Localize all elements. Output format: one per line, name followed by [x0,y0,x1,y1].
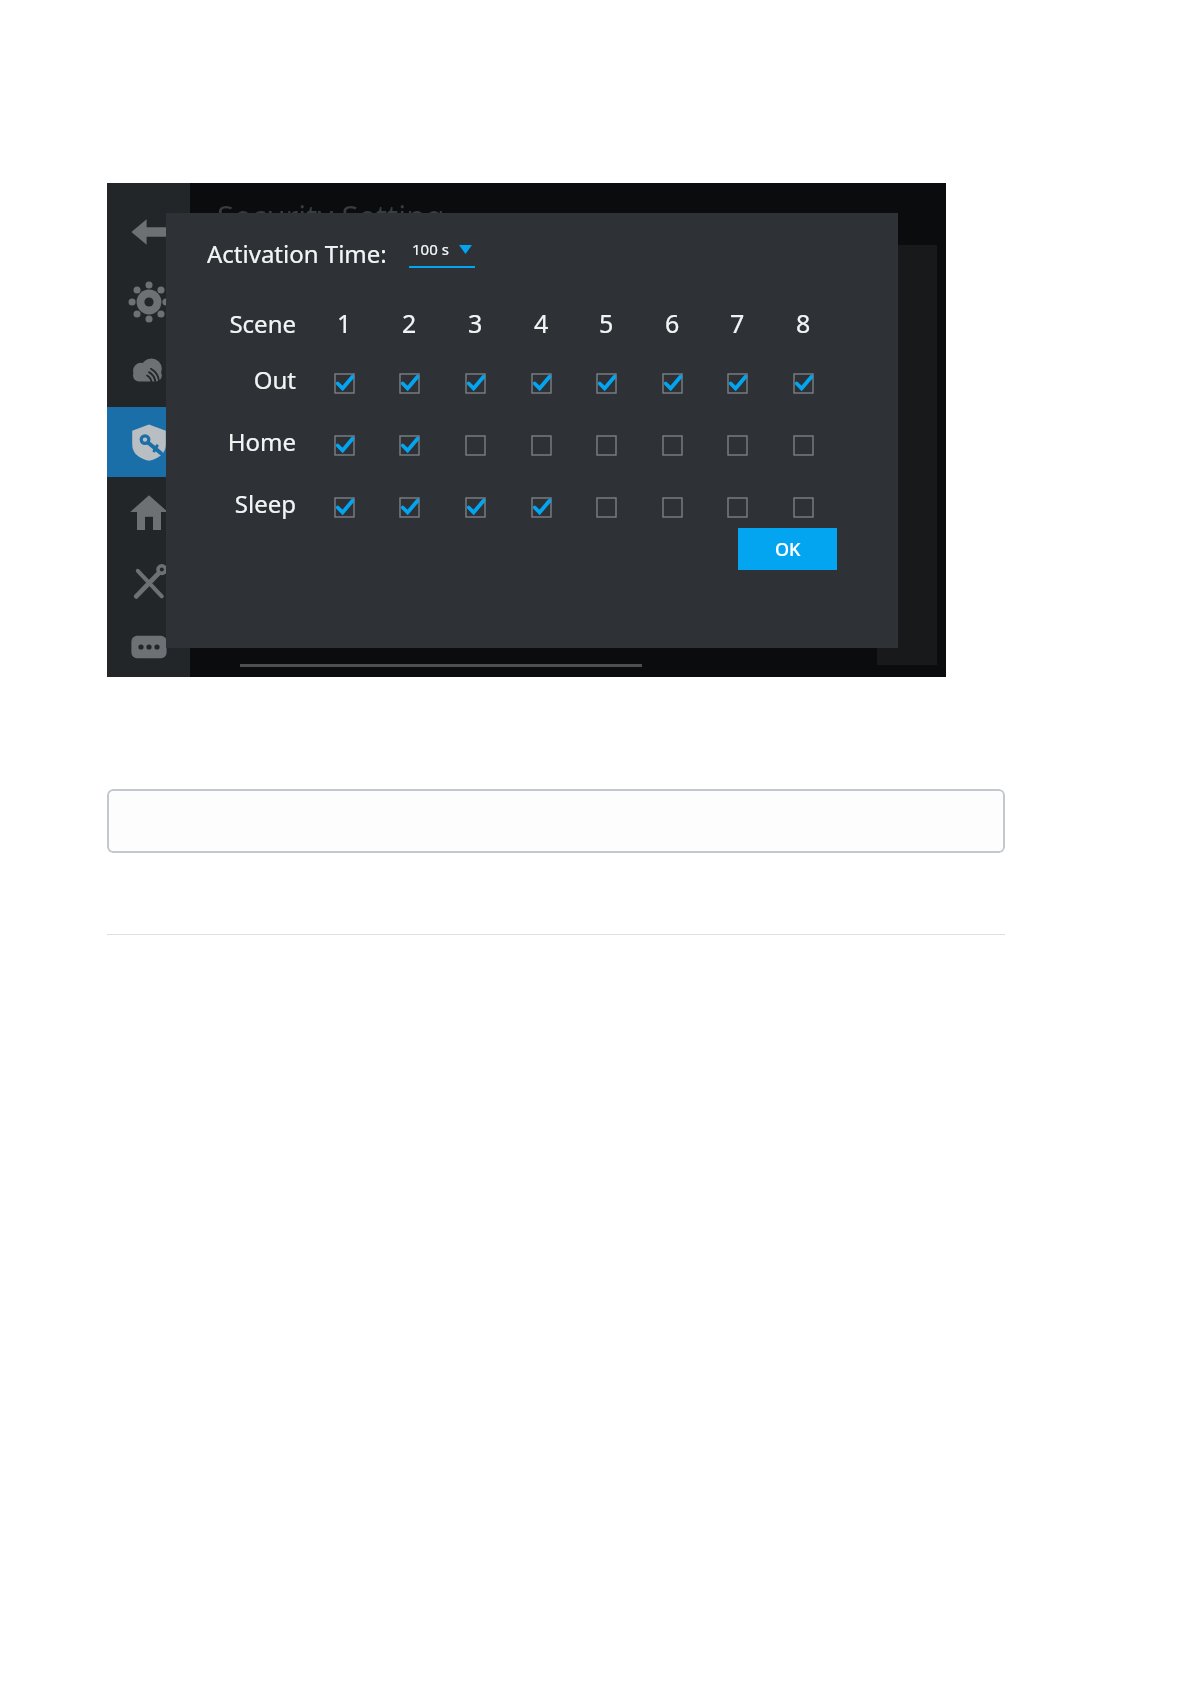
button[interactable]: Settings [107,267,190,337]
staticText: 7 [730,306,745,340]
staticText: 4 [534,306,549,340]
staticText: Scene [229,307,296,340]
button[interactable]: Home scene 8 [785,427,821,463]
button[interactable]: Home scene 2 [391,427,427,463]
button[interactable]: Out scene 7 [719,365,755,401]
button[interactable]: Out scene 4 [523,365,559,401]
button[interactable]: Out scene 5 [588,365,624,401]
staticText: 2 [402,306,417,340]
staticText: 100 s [412,239,449,259]
button[interactable]: Home scene 7 [719,427,755,463]
button[interactable]: Out scene 3 [457,365,493,401]
button[interactable]: Out scene 8 [785,365,821,401]
button[interactable]: Security [107,407,190,477]
staticText: 3 [468,306,483,340]
button[interactable]: Back [107,197,190,267]
staticText: Activation Time: [207,237,387,270]
button[interactable]: Home scene 1 [326,427,362,463]
staticText: OK [775,537,801,562]
button[interactable]: Network [107,337,190,407]
button[interactable]: Sleep scene 7 [719,489,755,525]
button[interactable]: Sleep scene 5 [588,489,624,525]
staticText: 6 [665,306,680,340]
button[interactable]: OK [738,528,837,570]
button[interactable]: Out scene 2 [391,365,427,401]
staticText: Home [227,425,296,458]
button[interactable]: Sleep scene 3 [457,489,493,525]
button[interactable]: Sleep scene 6 [654,489,690,525]
button[interactable]: 100 s [409,239,475,268]
button[interactable]: Sleep scene 4 [523,489,559,525]
button[interactable]: Sleep scene 2 [391,489,427,525]
staticText: Out [253,363,296,396]
button[interactable]: Home scene 6 [654,427,690,463]
button[interactable]: Tools [107,547,190,617]
button[interactable]: More [107,617,190,677]
staticText: 5 [599,306,614,340]
button[interactable]: Out scene 6 [654,365,690,401]
button[interactable]: Sleep scene 1 [326,489,362,525]
staticText: 8 [796,306,811,340]
button[interactable]: Sleep scene 8 [785,489,821,525]
staticText: Security Setting [217,195,445,237]
staticText: 1 [337,306,352,340]
button[interactable]: Home scene 4 [523,427,559,463]
button[interactable]: Home scene 5 [588,427,624,463]
button[interactable]: Out scene 1 [326,365,362,401]
button[interactable]: Home scene 3 [457,427,493,463]
button[interactable] [107,789,1005,853]
staticText: Sleep [234,487,296,520]
button[interactable]: Home [107,477,190,547]
